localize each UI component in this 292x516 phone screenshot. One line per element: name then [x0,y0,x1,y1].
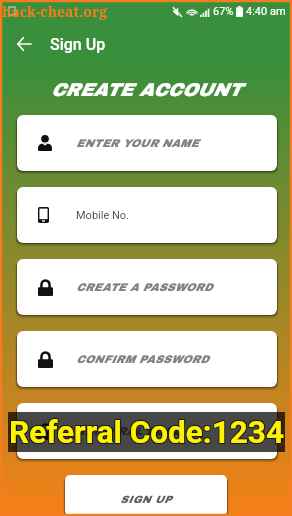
staticText: Referral Code:1234 [8,415,283,452]
staticText: CREATE ACCOUNT [0,80,292,100]
staticText: Referral Code:1234 [8,413,283,450]
staticText: hack-cheat.org [2,2,108,21]
staticText: SIGN UP [120,494,172,505]
staticText: 67% [213,5,234,18]
staticText: ENTER YOUR NAME [76,137,199,149]
button[interactable]: Mobile No. [17,187,277,243]
button[interactable]: ENTER YOUR NAME [17,115,277,171]
button[interactable]: CREATE A PASSWORD [17,259,277,315]
staticText: Referral Code:1234 [9,414,284,451]
button[interactable]: Back [9,29,39,59]
staticText: Referral Code:1234 [10,415,285,452]
button[interactable]: REFERRAL CODE [17,403,277,459]
staticText: CONFIRM PASSWORD [76,353,209,365]
button[interactable]: CONFIRM PASSWORD [17,331,277,387]
staticText: Referral Code:1234 [10,414,285,451]
staticText: Mobile No. [76,209,129,222]
staticText: Referral Code:1234 [10,413,285,450]
staticText: CREATE A PASSWORD [76,281,213,293]
button[interactable]: SIGN UP [65,475,227,516]
staticText: Referral Code:1234 [9,413,284,450]
staticText: Referral Code:1234 [9,415,284,452]
staticText: 4:40 am [246,5,286,18]
staticText: Sign Up [50,35,106,54]
staticText: Referral Code:1234 [8,414,283,451]
staticText: REFERRAL CODE [76,425,182,437]
